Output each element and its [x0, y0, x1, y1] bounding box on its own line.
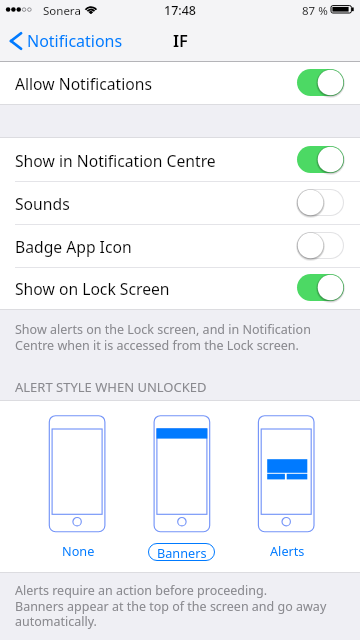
button[interactable]: Alerts	[252, 413, 320, 563]
button[interactable]: Back to Notifications	[0, 22, 131, 60]
staticText: Alerts	[270, 542, 305, 558]
button[interactable]: Badge App Icon	[0, 225, 360, 268]
staticText: Show on Lock Screen	[15, 278, 170, 299]
staticText: Sonera	[43, 3, 81, 19]
button[interactable]: None	[43, 413, 111, 563]
staticText: Notifications	[27, 30, 123, 52]
staticText: None	[62, 542, 95, 558]
button[interactable]: Toggle off	[297, 232, 344, 259]
button[interactable]: Toggle on	[297, 69, 344, 96]
staticText: Allow Notifications	[15, 73, 153, 94]
staticText: Banners	[157, 544, 207, 561]
button[interactable]: Allow Notifications	[0, 62, 360, 104]
staticText: IF	[173, 29, 188, 51]
button[interactable]: Sounds	[0, 182, 360, 225]
staticText: 17:48	[164, 2, 197, 19]
staticText: 87 %	[302, 3, 328, 19]
staticText: Badge App Icon	[15, 236, 132, 257]
button[interactable]: Banners	[148, 413, 216, 563]
staticText: ALERT STYLE WHEN UNLOCKED	[15, 378, 207, 396]
staticText: Sounds	[15, 193, 70, 214]
button[interactable]: Toggle off	[297, 189, 344, 216]
button[interactable]: Toggle on	[297, 146, 344, 173]
staticText: Alerts require an action before proceedi…	[15, 582, 327, 630]
button[interactable]: Show on Lock Screen	[0, 268, 360, 309]
button[interactable]: Toggle on	[297, 274, 344, 301]
staticText: Show in Notification Centre	[15, 150, 216, 171]
button[interactable]: Show in Notification Centre	[0, 138, 360, 182]
staticText: Show alerts on the Lock screen, and in N…	[15, 321, 311, 354]
